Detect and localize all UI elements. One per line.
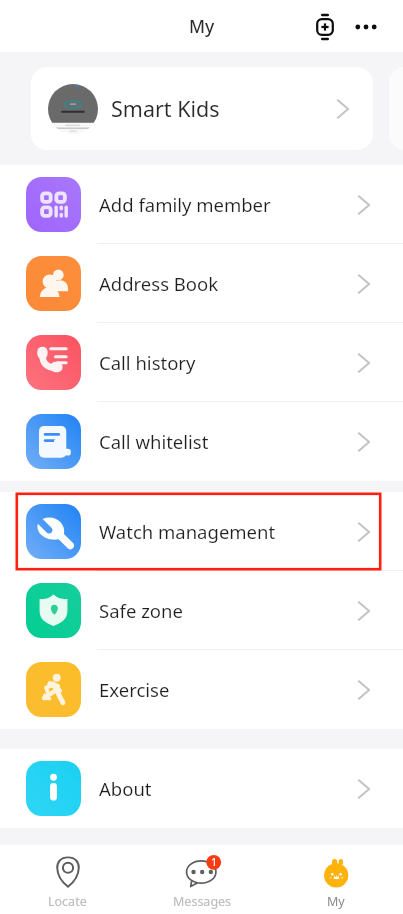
button[interactable]: My <box>269 845 403 914</box>
button[interactable]: Call whitelist <box>0 402 403 481</box>
button[interactable]: Call history <box>0 323 403 402</box>
button[interactable]: Watch management <box>0 492 403 571</box>
button[interactable]: 1 <box>135 845 269 914</box>
staticText: Call history <box>99 350 196 375</box>
staticText: Smart Kids <box>111 94 220 123</box>
button[interactable]: Address Book <box>0 244 403 323</box>
button[interactable]: Exercise <box>0 650 403 729</box>
button[interactable]: About <box>0 749 403 828</box>
staticText: Safe zone <box>99 598 183 623</box>
button[interactable]: Safe zone <box>0 571 403 650</box>
button[interactable]: Add device <box>303 5 347 49</box>
button[interactable]: Add family member <box>0 165 403 244</box>
staticText: Address Book <box>99 271 219 296</box>
staticText: My <box>327 893 345 910</box>
button[interactable]: More options <box>344 5 388 49</box>
staticText: Exercise <box>99 677 170 702</box>
staticText: Call whitelist <box>99 429 209 454</box>
staticText: Messages <box>173 893 232 910</box>
staticText: Watch management <box>99 519 276 544</box>
staticText: My <box>189 14 215 38</box>
staticText: 1 <box>211 855 217 869</box>
button[interactable]: Locate <box>0 845 135 914</box>
staticText: About <box>99 776 152 801</box>
staticText: Add family member <box>99 192 271 217</box>
button[interactable]: Smart Kids <box>31 67 373 150</box>
staticText: Locate <box>48 893 87 910</box>
